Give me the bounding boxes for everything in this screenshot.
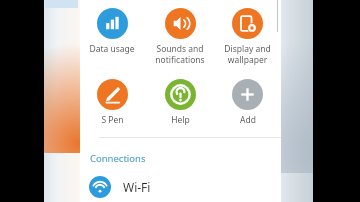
- button[interactable]: Display and wallpaper: [213, 8, 281, 65]
- staticText: Sounds and notifications: [155, 43, 205, 65]
- staticText: S Pen: [101, 114, 124, 126]
- button[interactable]: Help: [146, 79, 214, 126]
- staticText: Wi-Fi: [123, 179, 151, 195]
- staticText: Help: [171, 114, 190, 126]
- button[interactable]: Connections: [90, 152, 146, 165]
- button[interactable]: Data usage: [78, 8, 146, 55]
- button[interactable]: Add: [213, 79, 281, 126]
- button[interactable]: Sounds and notifications: [146, 8, 214, 65]
- staticText: Display and wallpaper: [224, 43, 271, 65]
- button[interactable]: Wi-Fi: [80, 172, 281, 202]
- staticText: Data usage: [89, 43, 135, 55]
- button[interactable]: S Pen: [78, 79, 146, 126]
- staticText: Connections: [90, 152, 146, 165]
- staticText: Add: [240, 114, 256, 126]
